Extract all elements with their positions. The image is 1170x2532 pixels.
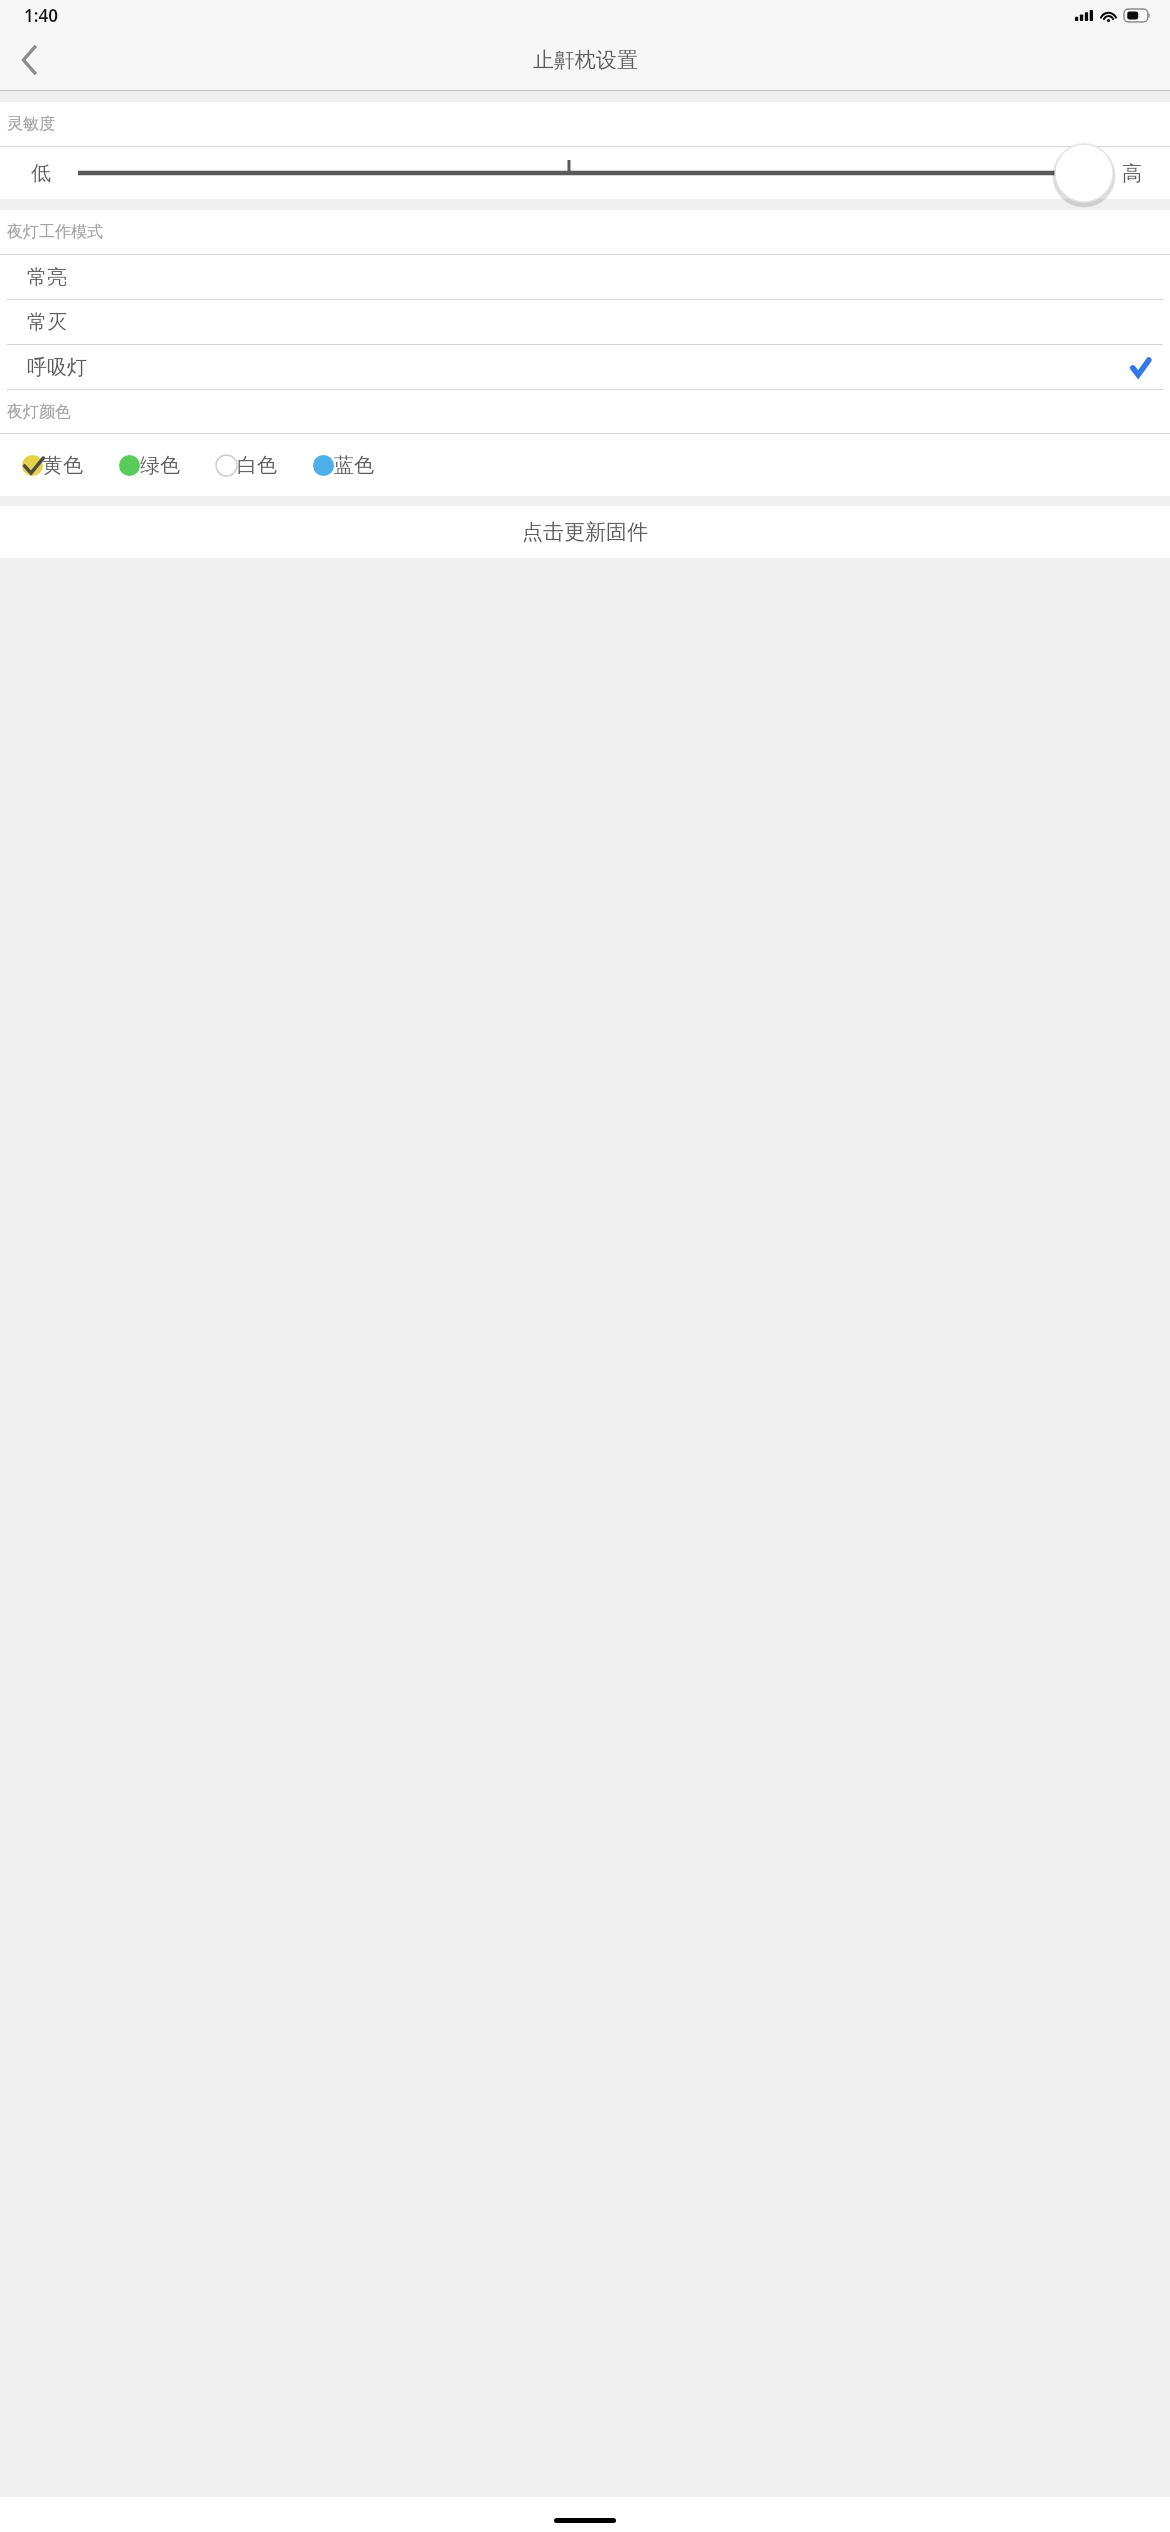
- staticText: 灵敏度: [7, 114, 55, 134]
- staticText: 夜灯工作模式: [7, 222, 103, 242]
- button[interactable]: 绿色: [119, 453, 180, 478]
- staticText: 黄色: [43, 453, 83, 478]
- staticText: 止鼾枕设置: [533, 47, 638, 73]
- staticText: 1:40: [24, 4, 58, 27]
- button[interactable]: 常灭: [0, 300, 1170, 344]
- button[interactable]: 常亮: [0, 255, 1170, 299]
- staticText: 夜灯颜色: [7, 402, 71, 422]
- staticText: 常亮: [27, 265, 67, 290]
- staticText: 高: [1122, 161, 1142, 186]
- staticText: 点击更新固件: [522, 519, 648, 545]
- button[interactable]: 白色: [216, 453, 277, 478]
- button[interactable]: 呼吸灯: [0, 345, 1170, 389]
- staticText: 低: [31, 161, 51, 186]
- staticText: 白色: [237, 453, 277, 478]
- button[interactable]: Sensitivity slider: [60, 147, 1100, 199]
- button[interactable]: 点击更新固件: [0, 506, 1170, 558]
- button[interactable]: Back: [0, 30, 58, 90]
- staticText: 呼吸灯: [27, 355, 87, 380]
- staticText: 蓝色: [334, 453, 374, 478]
- button[interactable]: 蓝色: [313, 453, 374, 478]
- staticText: 常灭: [27, 310, 67, 335]
- button[interactable]: 黄色: [22, 453, 83, 478]
- staticText: 绿色: [140, 453, 180, 478]
